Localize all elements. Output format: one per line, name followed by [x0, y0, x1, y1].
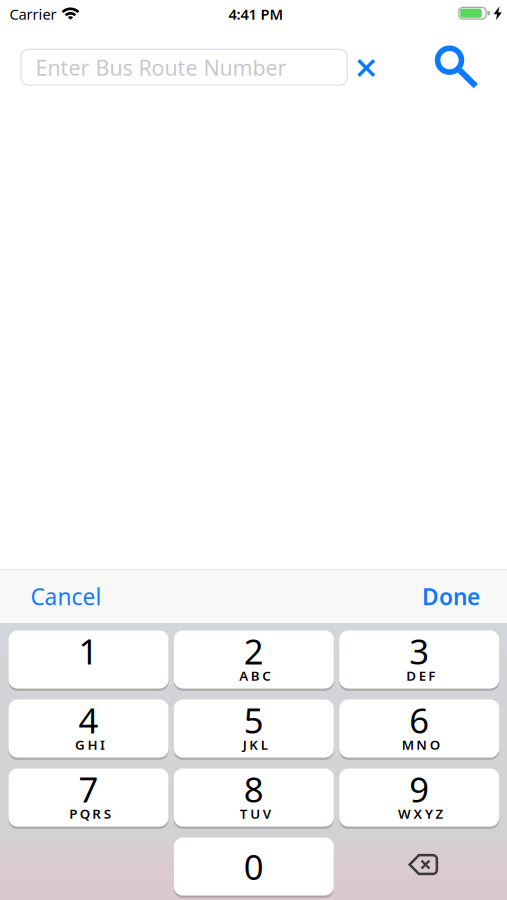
staticText: 3: [409, 628, 429, 674]
button[interactable]: 2: [174, 630, 334, 691]
button[interactable]: 3: [339, 630, 499, 691]
button[interactable]: 0: [174, 837, 334, 898]
button[interactable]: 9: [339, 768, 499, 829]
button[interactable]: Clear text: [357, 59, 375, 77]
staticText: MNO: [402, 736, 440, 753]
button[interactable]: Cancel: [30, 581, 101, 611]
button[interactable]: 4: [8, 699, 168, 760]
staticText: 4:41 PM: [228, 4, 283, 24]
staticText: JKL: [243, 736, 268, 753]
staticText: Enter Bus Route Number: [35, 53, 286, 82]
staticText: DEF: [406, 667, 435, 684]
staticText: 9: [409, 766, 429, 812]
button[interactable]: 1: [8, 630, 168, 691]
staticText: 4: [78, 697, 98, 743]
staticText: 1: [78, 628, 98, 674]
staticText: WXYZ: [398, 805, 443, 822]
staticText: 7: [78, 766, 98, 812]
staticText: 6: [409, 697, 429, 743]
staticText: 8: [244, 766, 264, 812]
button[interactable]: Delete: [408, 854, 438, 875]
staticText: PQRS: [69, 805, 111, 822]
staticText: ABC: [239, 667, 271, 684]
staticText: Carrier: [9, 4, 56, 24]
staticText: Done: [422, 581, 480, 611]
button[interactable]: 5: [174, 699, 334, 760]
staticText: 2: [244, 628, 264, 674]
staticText: Cancel: [30, 581, 101, 611]
staticText: GHI: [75, 736, 105, 753]
staticText: TUV: [240, 805, 271, 822]
button[interactable]: Enter Bus Route Number: [20, 49, 348, 86]
staticText: 0: [244, 843, 264, 889]
button[interactable]: 8: [174, 768, 334, 829]
button[interactable]: 6: [339, 699, 499, 760]
button[interactable]: 7: [8, 768, 168, 829]
button[interactable]: Done: [422, 581, 480, 611]
button[interactable]: Search: [434, 45, 479, 90]
staticText: 5: [244, 697, 264, 743]
